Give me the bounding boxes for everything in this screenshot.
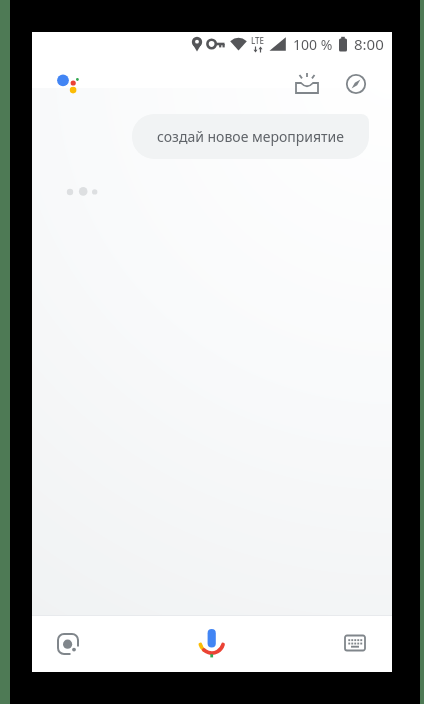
staticText: 8:00 [354,34,384,54]
button[interactable] [345,73,367,95]
button[interactable] [54,630,82,658]
staticText: создай новое мероприятие [157,127,344,146]
button[interactable] [344,634,366,652]
staticText: 100 % [293,35,333,54]
button[interactable] [198,626,226,660]
button[interactable] [292,72,322,96]
staticText: LTE [251,35,265,46]
button[interactable]: создай новое мероприятие [132,114,369,159]
